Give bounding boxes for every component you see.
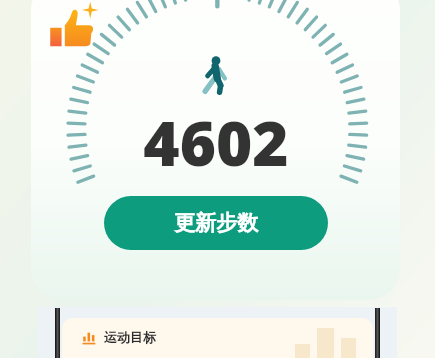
button[interactable]: 更新步数 [104,196,328,250]
button[interactable]: Like [47,3,101,57]
staticText: 4602 [143,100,289,184]
staticText: 更新步数 [174,210,258,236]
button[interactable]: 运动目标 [62,318,373,358]
staticText: 运动目标 [104,329,156,345]
